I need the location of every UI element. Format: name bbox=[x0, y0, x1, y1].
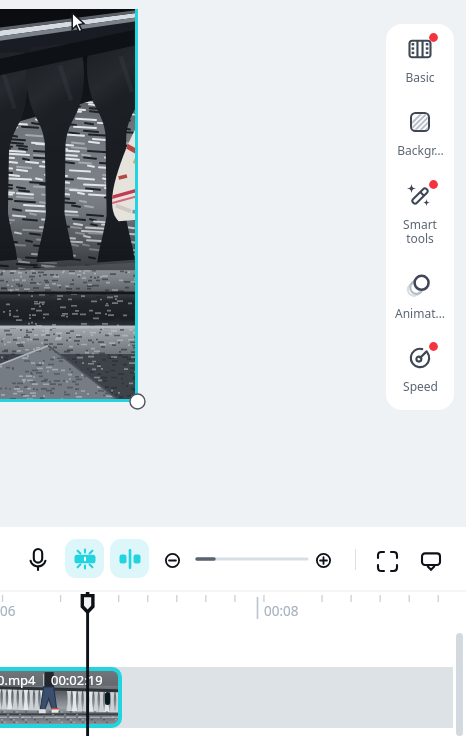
staticText: 0.mp4 bbox=[0, 671, 36, 689]
button[interactable]: Zoom in bbox=[308, 545, 338, 575]
button[interactable]: Fit to screen bbox=[371, 545, 403, 577]
staticText: 00:02:19 bbox=[51, 671, 103, 689]
button[interactable]: Split bbox=[110, 539, 149, 578]
button[interactable]: Auto enhance bbox=[65, 539, 104, 578]
button[interactable]: Basic bbox=[386, 29, 454, 85]
staticText: Basic bbox=[405, 69, 435, 85]
button[interactable]: Speed bbox=[386, 338, 454, 394]
button[interactable] bbox=[0, 9, 138, 402]
staticText: 06 bbox=[0, 602, 16, 620]
button[interactable]: Backgr… bbox=[386, 102, 454, 158]
staticText: 00:08 bbox=[264, 602, 299, 620]
button[interactable]: Smart tools bbox=[386, 176, 454, 247]
button[interactable]: Record voiceover bbox=[21, 543, 55, 577]
button[interactable]: Animat… bbox=[386, 265, 454, 321]
staticText: Backgr… bbox=[397, 142, 444, 158]
staticText: Smart tools bbox=[403, 216, 437, 247]
staticText: Animat… bbox=[395, 305, 445, 321]
staticText: Speed bbox=[403, 378, 438, 394]
button[interactable]: Preview device bbox=[415, 545, 447, 577]
button[interactable]: 0.mp4 bbox=[0, 667, 122, 728]
button[interactable]: Zoom out bbox=[157, 545, 187, 575]
